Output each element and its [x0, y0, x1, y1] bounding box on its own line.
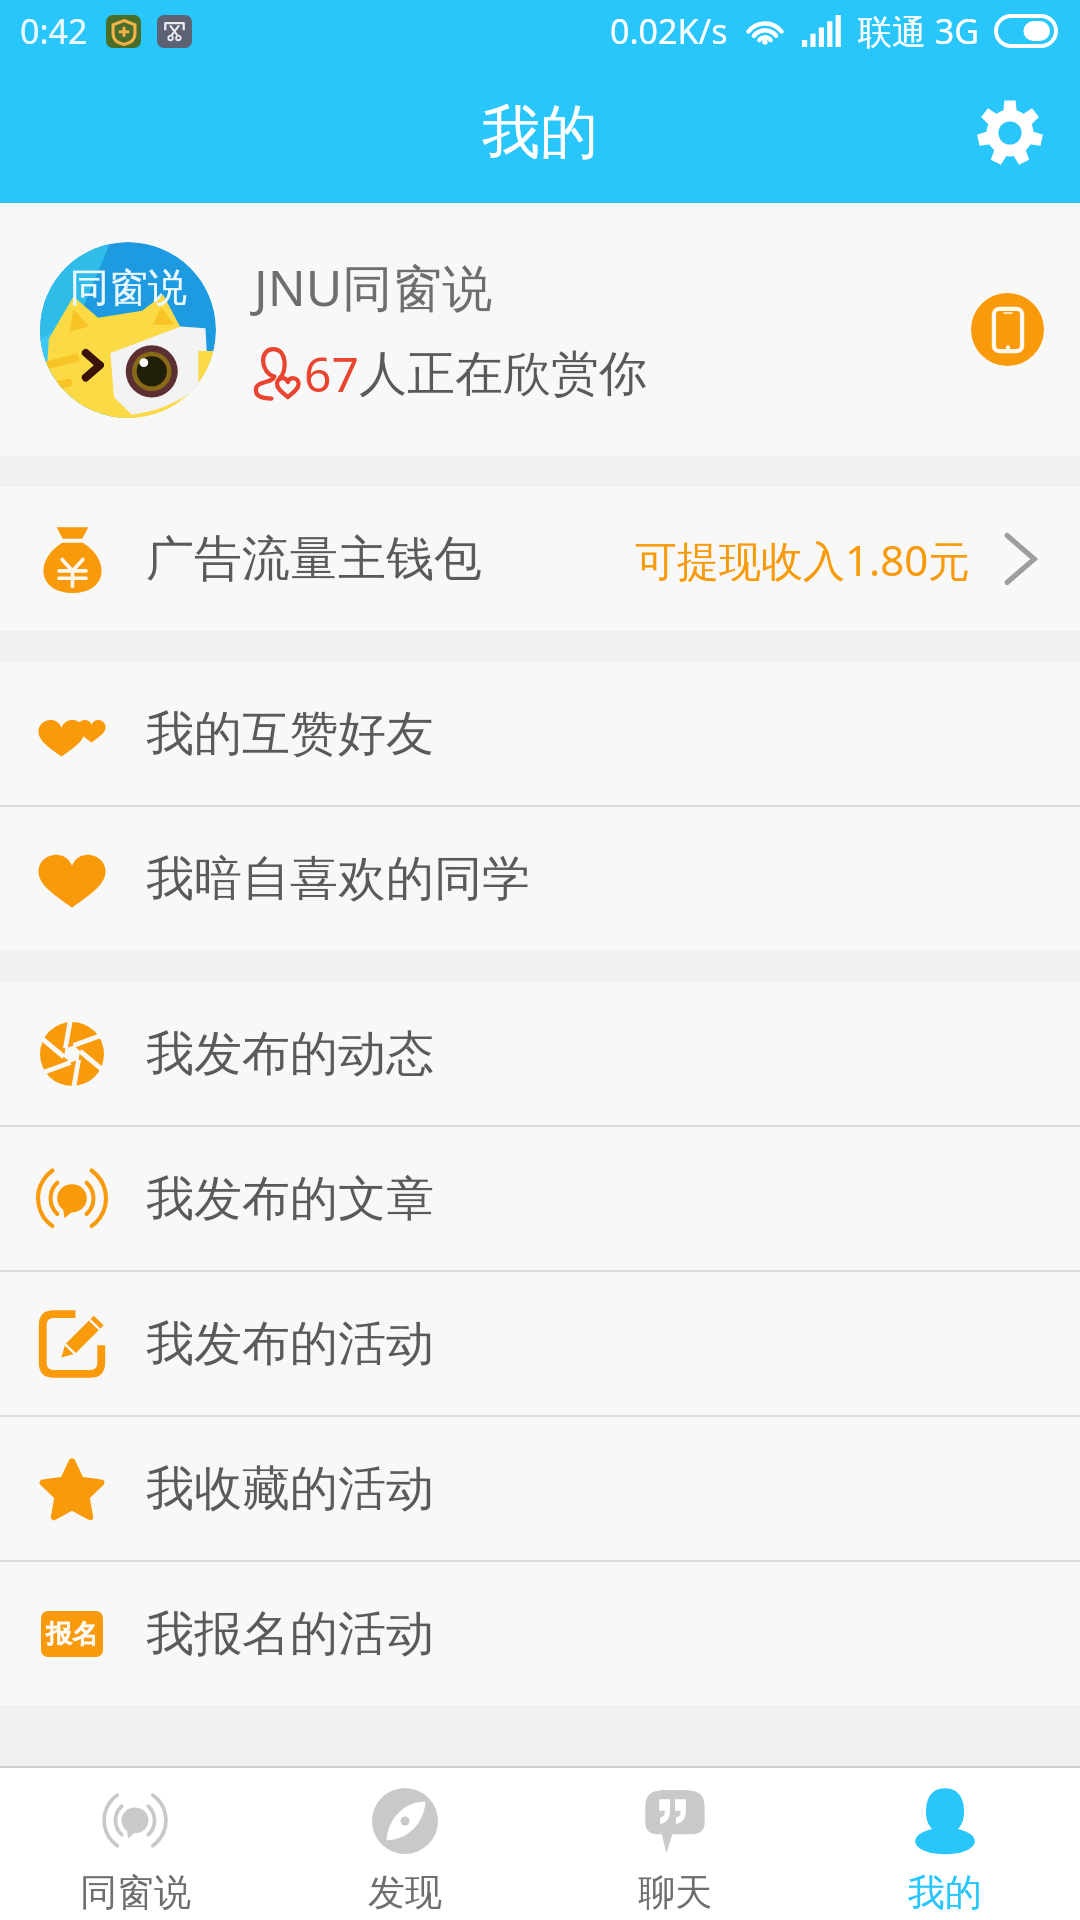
button[interactable]: 我发布的动态 — [0, 982, 1080, 1125]
staticText: 同窗说 — [80, 1869, 191, 1916]
staticText: 广告流量主钱包 — [146, 529, 482, 589]
staticText: 我发布的活动 — [146, 1314, 434, 1374]
staticText: 67 — [304, 341, 359, 406]
staticText: 我发布的文章 — [146, 1169, 434, 1229]
button[interactable]: 广告流量主钱包 — [0, 487, 1080, 631]
button[interactable]: 同窗说 — [0, 203, 1080, 456]
staticText: 我报名的活动 — [146, 1604, 434, 1664]
button[interactable]: 报名 — [0, 1562, 1080, 1705]
button[interactable]: 我暗自喜欢的同学 — [0, 807, 1080, 950]
button[interactable]: 发现 — [270, 1773, 540, 1916]
staticText: 我收藏的活动 — [146, 1459, 434, 1519]
staticText: JNU同窗说 — [254, 253, 493, 321]
button[interactable]: 聊天 — [540, 1773, 810, 1916]
button[interactable]: 我的 — [810, 1773, 1080, 1916]
button[interactable]: 我发布的文章 — [0, 1127, 1080, 1270]
staticText: 聊天 — [638, 1869, 712, 1916]
staticText: 报名 — [46, 1618, 98, 1651]
staticText: 人正在欣赏你 — [359, 344, 647, 404]
staticText: 我的互赞好友 — [146, 704, 434, 764]
staticText: 我的 — [908, 1869, 982, 1916]
staticText: 0:42 — [20, 8, 88, 54]
staticText: 发现 — [368, 1869, 442, 1916]
staticText: 同窗说 — [70, 263, 187, 312]
staticText: 我的 — [482, 96, 598, 169]
staticText: 可提现收入1.80元 — [635, 531, 971, 588]
button[interactable]: Settings — [956, 79, 1064, 187]
button[interactable]: 我收藏的活动 — [0, 1417, 1080, 1560]
staticText: 我暗自喜欢的同学 — [146, 849, 530, 909]
button[interactable]: 我的互赞好友 — [0, 662, 1080, 805]
staticText: 0.02K/s — [610, 8, 728, 54]
button[interactable]: 同窗说 — [0, 1773, 270, 1916]
staticText: 联通 3G — [858, 8, 980, 54]
button[interactable]: 我发布的活动 — [0, 1272, 1080, 1415]
staticText: 我发布的动态 — [146, 1024, 434, 1084]
button[interactable]: Phone — [971, 293, 1044, 366]
